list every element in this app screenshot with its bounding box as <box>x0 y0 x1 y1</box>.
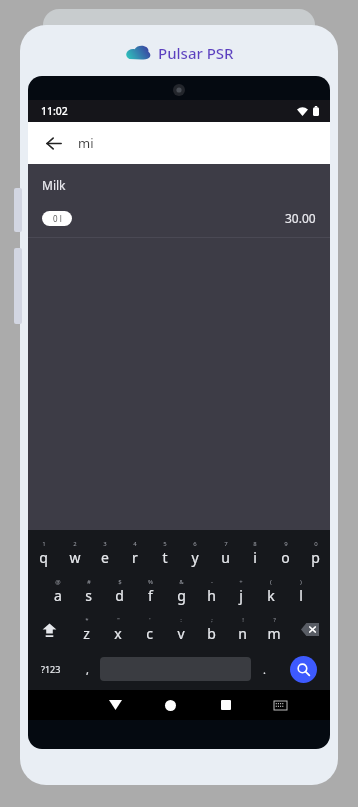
button[interactable]: Search <box>290 656 317 683</box>
staticText: : <box>180 616 182 624</box>
button[interactable]: $ <box>104 572 135 610</box>
staticText: ( <box>270 578 272 586</box>
button[interactable]: . <box>251 648 277 690</box>
button[interactable]: % <box>135 572 166 610</box>
staticText: f <box>148 586 153 605</box>
staticText: Pulsar PSR <box>158 43 234 63</box>
button[interactable]: 6 <box>180 534 210 572</box>
staticText: 11:02 <box>41 104 68 118</box>
staticText: " <box>117 616 120 624</box>
button[interactable]: Back <box>88 690 143 720</box>
button[interactable]: ; <box>196 610 227 648</box>
staticText: 4 <box>133 540 137 548</box>
staticText: o <box>281 548 290 567</box>
staticText: 1 <box>42 540 46 548</box>
staticText: c <box>146 624 153 643</box>
button[interactable]: ( <box>256 572 286 610</box>
staticText: 0 l <box>53 213 62 224</box>
staticText: i <box>253 548 257 567</box>
staticText: 9 <box>284 540 288 548</box>
staticText: b <box>207 624 216 643</box>
staticText: l <box>299 586 303 605</box>
button[interactable]: * <box>70 610 102 648</box>
button[interactable]: 0 <box>300 534 330 572</box>
button[interactable]: ?123 <box>28 648 74 690</box>
staticText: s <box>85 586 92 605</box>
button[interactable]: Milk <box>28 164 330 238</box>
staticText: 8 <box>253 540 257 548</box>
button[interactable]: : <box>165 610 196 648</box>
staticText: a <box>54 586 62 605</box>
button[interactable]: + <box>226 572 256 610</box>
staticText: 30.00 <box>285 210 316 226</box>
staticText: p <box>311 548 320 567</box>
button[interactable]: mi <box>78 122 330 164</box>
staticText: 5 <box>163 540 167 548</box>
staticText: 2 <box>73 540 77 548</box>
staticText: h <box>207 586 216 605</box>
button[interactable]: - <box>196 572 226 610</box>
staticText: v <box>177 624 185 643</box>
staticText: j <box>239 586 243 605</box>
staticText: - <box>211 578 213 586</box>
staticText: % <box>148 578 153 586</box>
button[interactable]: , <box>74 648 100 690</box>
staticText: * <box>85 616 89 624</box>
staticText: 6 <box>193 540 197 548</box>
staticText: y <box>191 548 199 567</box>
staticText: 0 <box>314 540 318 548</box>
button[interactable]: " <box>102 610 134 648</box>
staticText: x <box>114 624 122 643</box>
button[interactable]: ) <box>286 572 316 610</box>
button[interactable]: 3 <box>90 534 120 572</box>
staticText: ' <box>149 616 151 624</box>
staticText: u <box>221 548 230 567</box>
staticText: # <box>87 578 91 586</box>
staticText: . <box>263 662 266 677</box>
button[interactable]: 7 <box>210 534 240 572</box>
staticText: ?123 <box>41 663 61 675</box>
staticText: 7 <box>224 540 228 548</box>
staticText: ) <box>300 578 302 586</box>
button[interactable]: 2 <box>59 534 90 572</box>
button[interactable]: 9 <box>270 534 300 572</box>
staticText: ! <box>242 616 244 624</box>
staticText: + <box>239 578 243 586</box>
button[interactable]: ' <box>134 610 165 648</box>
button[interactable]: 5 <box>150 534 180 572</box>
staticText: Milk <box>42 177 66 193</box>
staticText: m <box>267 624 281 643</box>
staticText: z <box>83 624 90 643</box>
button[interactable]: @ <box>42 572 73 610</box>
staticText: @ <box>55 578 61 586</box>
button[interactable]: # <box>73 572 104 610</box>
button[interactable]: Recents <box>198 690 253 720</box>
staticText: e <box>101 548 109 567</box>
staticText: mi <box>78 134 94 152</box>
button[interactable]: ! <box>227 610 258 648</box>
staticText: g <box>177 586 186 605</box>
staticText: k <box>267 586 275 605</box>
button[interactable]: Shift <box>28 610 70 648</box>
button[interactable]: Home <box>143 690 198 720</box>
button[interactable]: 1 <box>28 534 59 572</box>
staticText: , <box>86 662 89 677</box>
button[interactable]: 8 <box>240 534 270 572</box>
staticText: 3 <box>103 540 107 548</box>
button[interactable]: & <box>166 572 196 610</box>
button[interactable]: Back <box>36 126 70 160</box>
button[interactable]: Backspace <box>289 610 330 648</box>
staticText: w <box>69 548 81 567</box>
staticText: d <box>115 586 124 605</box>
staticText: r <box>132 548 138 567</box>
staticText: n <box>238 624 247 643</box>
button[interactable]: Switch keyboard <box>253 690 308 720</box>
staticText: $ <box>118 578 122 586</box>
button[interactable]: 4 <box>120 534 150 572</box>
staticText: & <box>179 578 184 586</box>
staticText: t <box>162 548 168 567</box>
staticText: ; <box>211 616 213 624</box>
staticText: ? <box>273 616 276 624</box>
button[interactable]: ? <box>258 610 289 648</box>
